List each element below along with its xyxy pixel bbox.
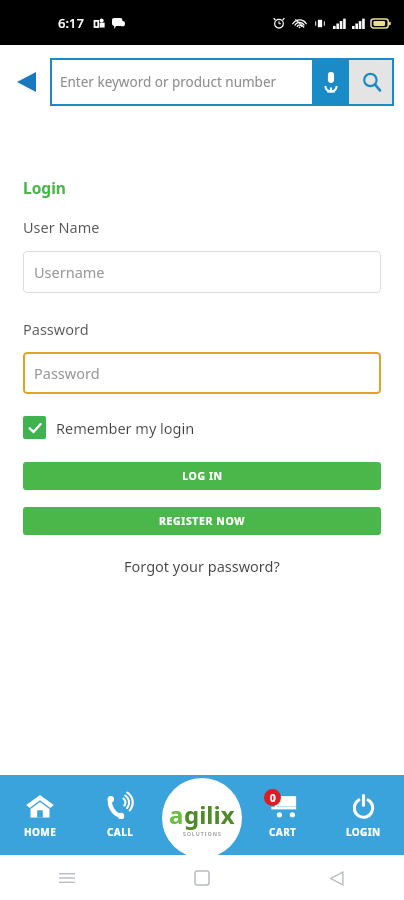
staticText: CALL bbox=[107, 825, 134, 839]
button[interactable]: Recent apps bbox=[48, 859, 86, 897]
button[interactable]: Search bbox=[349, 58, 394, 106]
staticText: Remember my login bbox=[56, 418, 195, 438]
staticText: User Name bbox=[23, 217, 100, 237]
button[interactable]: CALL bbox=[80, 785, 161, 845]
button[interactable]: LOGIN bbox=[323, 785, 404, 845]
staticText: HOME bbox=[24, 825, 57, 839]
button[interactable]: Remember my login bbox=[23, 416, 195, 439]
button[interactable]: Home bbox=[183, 859, 221, 897]
staticText: Password bbox=[23, 319, 89, 339]
staticText: gilix bbox=[184, 798, 235, 831]
button[interactable]: Back bbox=[9, 65, 43, 99]
button[interactable]: Password bbox=[23, 352, 381, 394]
button[interactable]: Voice search bbox=[312, 58, 349, 106]
staticText: Password bbox=[34, 363, 100, 383]
button[interactable]: 0 bbox=[242, 785, 323, 845]
staticText: Enter keyword or product number bbox=[60, 73, 277, 91]
staticText: LOGIN bbox=[346, 825, 381, 839]
staticText: 0 bbox=[270, 791, 276, 805]
staticText: 6:17 bbox=[58, 14, 84, 32]
button[interactable]: Enter keyword or product number bbox=[50, 58, 312, 106]
staticText: a bbox=[169, 798, 184, 831]
button[interactable]: Agilix Solutions home bbox=[162, 778, 242, 858]
staticText: LOG IN bbox=[182, 469, 223, 483]
staticText: Username bbox=[34, 262, 105, 282]
button[interactable]: Username bbox=[23, 251, 381, 293]
button[interactable]: LOG IN bbox=[23, 462, 381, 490]
staticText: Forgot your password? bbox=[124, 556, 280, 576]
staticText: Login bbox=[23, 177, 66, 198]
staticText: SOLUTIONS bbox=[183, 831, 222, 838]
button[interactable]: REGISTER NOW bbox=[23, 507, 381, 535]
staticText: CART bbox=[269, 825, 297, 839]
button[interactable]: HOME bbox=[0, 785, 80, 845]
staticText: REGISTER NOW bbox=[159, 514, 245, 528]
button[interactable]: Back bbox=[318, 859, 356, 897]
button[interactable]: Forgot your password? bbox=[23, 556, 381, 576]
